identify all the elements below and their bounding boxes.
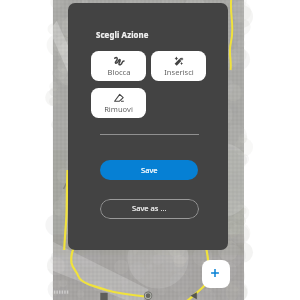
staticText: Save [141, 165, 158, 175]
button[interactable]: Blocca [91, 51, 146, 81]
button[interactable]: Rimuovi [91, 88, 146, 118]
button[interactable]: Save [100, 160, 198, 180]
button[interactable]: Add [202, 260, 230, 288]
staticText: Save as ... [132, 203, 167, 213]
button[interactable]: Inserisci [151, 51, 206, 81]
staticText: Inserisci [164, 67, 194, 77]
staticText: Rimuovi [104, 104, 133, 114]
button[interactable]: Save as ... [100, 199, 199, 219]
staticText: Scegli Azione [96, 30, 149, 41]
staticText: Blocca [107, 67, 131, 77]
